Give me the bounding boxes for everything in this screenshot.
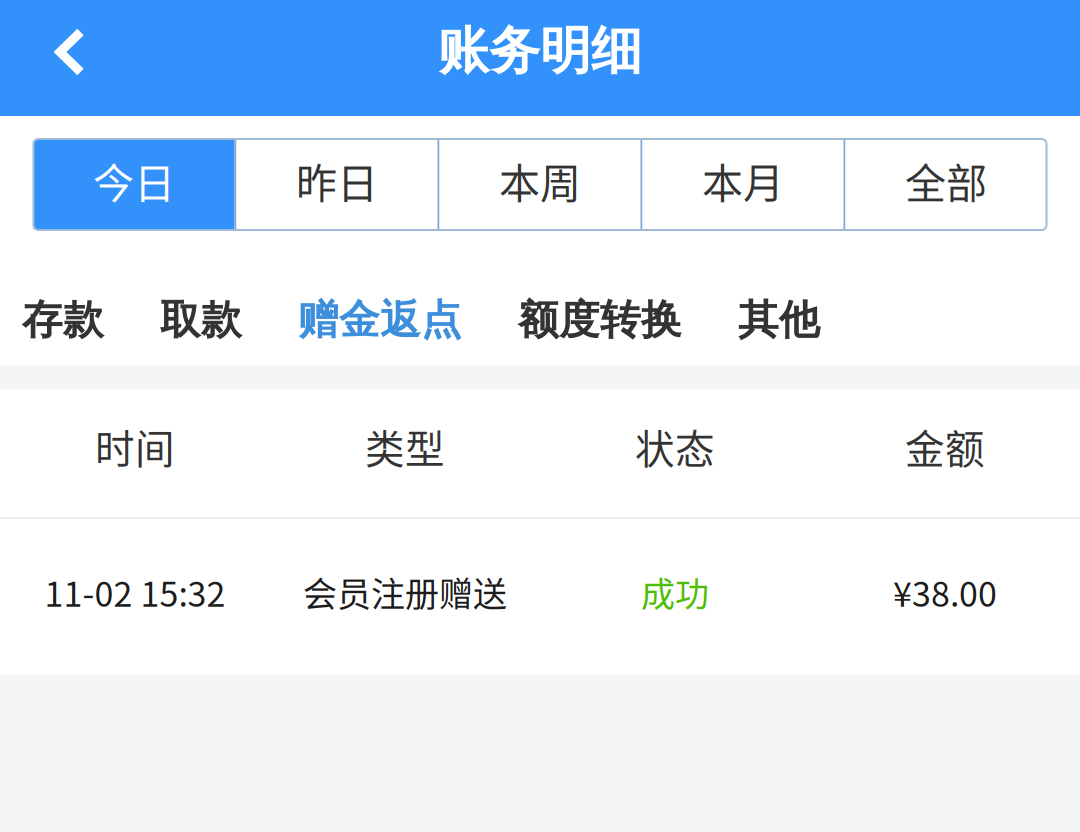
staticText: 会员注册赠送 — [303, 567, 507, 617]
button[interactable]: 昨日 — [236, 140, 437, 229]
staticText: 状态 — [635, 418, 715, 475]
staticText: 全部 — [905, 151, 987, 210]
button[interactable]: 本周 — [439, 140, 640, 229]
button[interactable]: 其他 — [738, 292, 820, 348]
staticText: 取款 — [160, 294, 242, 345]
staticText: 本月 — [702, 151, 784, 210]
button[interactable]: 额度转换 — [518, 292, 682, 348]
staticText: 金额 — [905, 418, 985, 475]
staticText: 成功 — [641, 567, 709, 617]
button[interactable]: Back — [0, 0, 126, 116]
button[interactable]: 11-02 15:32 — [0, 519, 1080, 675]
staticText: 其他 — [738, 294, 820, 345]
staticText: 存款 — [22, 294, 104, 345]
staticText: 今日 — [93, 151, 175, 210]
staticText: 额度转换 — [518, 294, 682, 345]
staticText: 11-02 15:32 — [44, 567, 225, 617]
staticText: 赠金返点 — [298, 294, 462, 345]
button[interactable]: 赠金返点 — [298, 292, 462, 348]
button[interactable]: 本月 — [642, 140, 843, 229]
button[interactable]: 今日 — [33, 140, 234, 229]
staticText: 本周 — [499, 151, 581, 210]
button[interactable]: 全部 — [845, 140, 1046, 229]
button[interactable]: 取款 — [160, 292, 242, 348]
staticText: 时间 — [95, 418, 175, 475]
staticText: 账务明细 — [438, 19, 642, 83]
staticText: 昨日 — [296, 151, 378, 210]
button[interactable]: 存款 — [22, 292, 104, 348]
staticText: 类型 — [365, 418, 445, 475]
staticText: ¥38.00 — [893, 567, 997, 617]
